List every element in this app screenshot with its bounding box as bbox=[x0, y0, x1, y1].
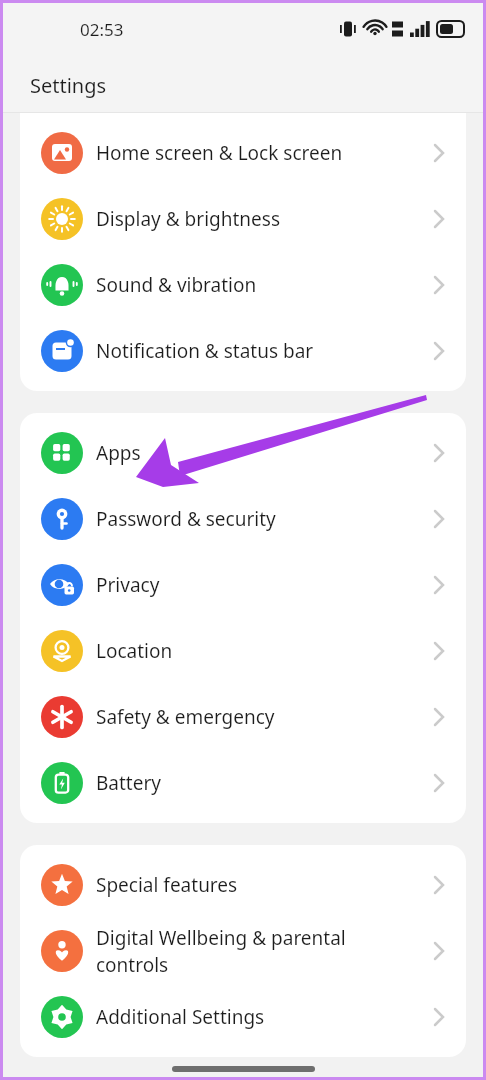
staticText: Home screen & Lock screen bbox=[96, 140, 343, 166]
other: Digital Wellbeing & parental controls bbox=[427, 918, 453, 984]
other: Home screen & Lock screen bbox=[427, 120, 453, 186]
button[interactable]: Apps bbox=[20, 420, 466, 486]
staticText: Special features bbox=[96, 872, 238, 898]
staticText: Additional Settings bbox=[96, 1004, 265, 1030]
other: Special features bbox=[427, 852, 453, 918]
button[interactable]: Battery bbox=[20, 750, 466, 816]
button[interactable]: Sound & vibration bbox=[20, 252, 466, 318]
other: Apps bbox=[427, 420, 453, 486]
button[interactable]: Safety & emergency bbox=[20, 684, 466, 750]
staticText: Apps bbox=[96, 440, 141, 466]
button[interactable]: Notification & status bar bbox=[20, 318, 466, 384]
staticText: Battery bbox=[96, 770, 161, 796]
button[interactable]: Display & brightness bbox=[20, 186, 466, 252]
button[interactable]: Special features bbox=[20, 852, 466, 918]
staticText: Digital Wellbeing & parental controls bbox=[96, 925, 419, 978]
staticText: Safety & emergency bbox=[96, 704, 275, 730]
button[interactable]: Privacy bbox=[20, 552, 466, 618]
staticText: Privacy bbox=[96, 572, 160, 598]
other: Safety & emergency bbox=[427, 684, 453, 750]
button[interactable]: Additional Settings bbox=[20, 984, 466, 1050]
staticText: 02:53 bbox=[80, 18, 124, 41]
staticText: Settings bbox=[30, 72, 107, 99]
button[interactable]: Digital Wellbeing & parental controls bbox=[20, 918, 466, 984]
staticText: Sound & vibration bbox=[96, 272, 257, 298]
other: Additional Settings bbox=[427, 984, 453, 1050]
button[interactable]: Location bbox=[20, 618, 466, 684]
other: Sound & vibration bbox=[427, 252, 453, 318]
other: Location bbox=[427, 618, 453, 684]
other: Password & security bbox=[427, 486, 453, 552]
other: Notification & status bar bbox=[427, 318, 453, 384]
other: Display & brightness bbox=[427, 186, 453, 252]
staticText: Location bbox=[96, 638, 173, 664]
button[interactable]: Home screen & Lock screen bbox=[20, 120, 466, 186]
staticText: Display & brightness bbox=[96, 206, 280, 232]
button[interactable]: Password & security bbox=[20, 486, 466, 552]
staticText: Password & security bbox=[96, 506, 276, 532]
staticText: Notification & status bar bbox=[96, 338, 314, 364]
other: Battery bbox=[427, 750, 453, 816]
other: Privacy bbox=[427, 552, 453, 618]
